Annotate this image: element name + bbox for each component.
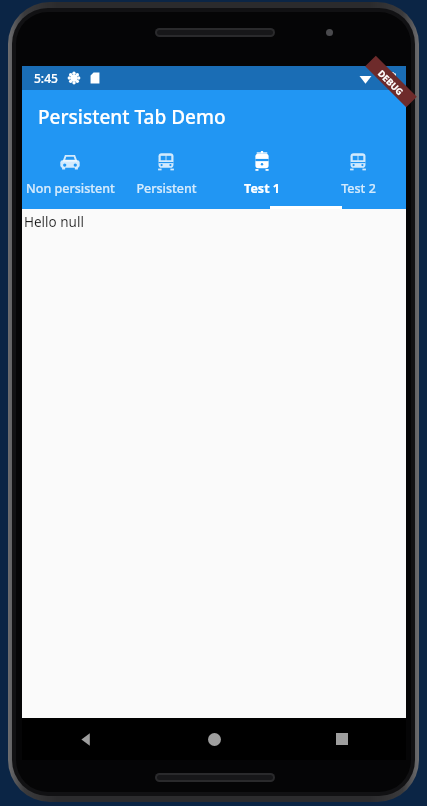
staticText: Persistent (136, 180, 197, 197)
staticText: 5:45 (34, 70, 58, 86)
button[interactable]: Back (22, 718, 150, 760)
staticText: Test 1 (244, 180, 280, 197)
staticText: DEBUG (376, 67, 406, 97)
staticText: Test 2 (341, 180, 376, 197)
staticText: Persistent Tab Demo (38, 104, 226, 130)
button[interactable]: Test 2 (310, 143, 406, 209)
staticText: Non persistent (26, 180, 115, 197)
button[interactable]: Recent apps (278, 718, 406, 760)
button[interactable]: Persistent (118, 143, 214, 209)
button[interactable]: Test 1 (214, 143, 310, 209)
button[interactable]: Home (150, 718, 278, 760)
button[interactable]: Non persistent (22, 143, 118, 209)
staticText: Hello null (24, 213, 84, 231)
